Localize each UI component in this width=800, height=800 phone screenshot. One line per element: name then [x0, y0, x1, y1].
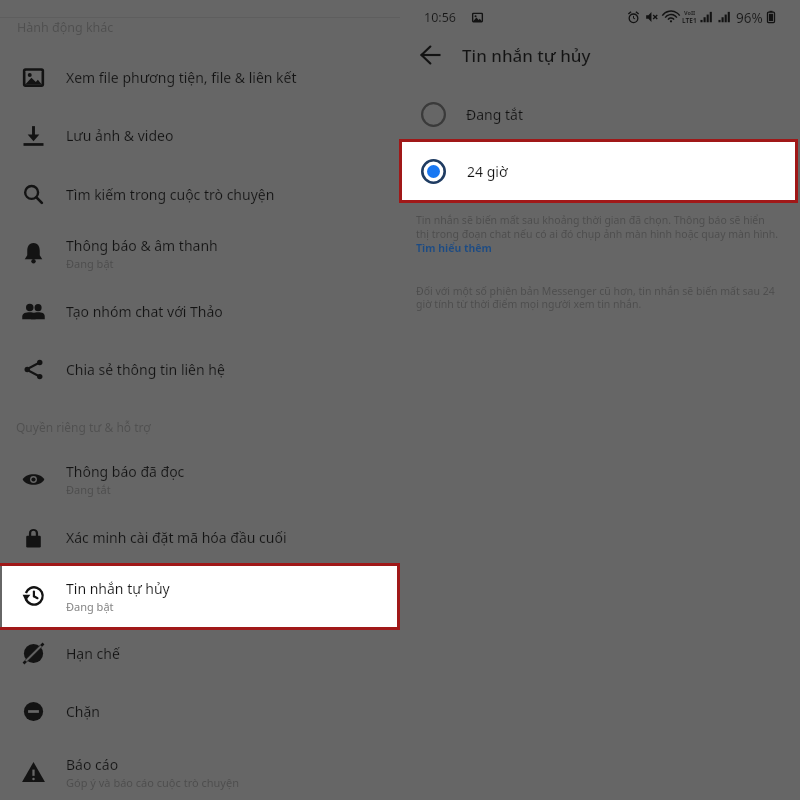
button[interactable]: Chặn	[0, 684, 400, 738]
staticText: 10:56	[424, 9, 456, 26]
staticText: Thông báo đã đọc	[66, 462, 185, 481]
staticText: Tạo nhóm chat với Thảo	[66, 302, 223, 321]
staticText: Đang bật	[66, 599, 114, 614]
button[interactable]: Xác minh cài đặt mã hóa đầu cuối	[0, 510, 400, 564]
button[interactable]: 24 giờ	[400, 142, 800, 201]
staticText: Tìm kiếm trong cuộc trò chuyện	[66, 185, 275, 204]
button[interactable]: Back	[400, 34, 462, 76]
staticText: Xác minh cài đặt mã hóa đầu cuối	[66, 528, 287, 547]
staticText: Thông báo & âm thanh	[66, 236, 218, 255]
staticText: Tin nhắn tự hủy	[66, 579, 170, 598]
staticText: Quyền riêng tư & hỗ trợ	[16, 419, 151, 435]
button[interactable]: Thông báo đã đọc	[0, 452, 400, 506]
staticText: Tin nhắn sẽ biến mất sau khoảng thời gia…	[416, 213, 780, 241]
staticText: Hành động khác	[17, 19, 114, 36]
staticText: Báo cáo	[66, 755, 119, 774]
button[interactable]: Xem file phương tiện, file & liên kết	[0, 50, 400, 104]
staticText: Đang bật	[66, 256, 114, 271]
button[interactable]: Thông báo & âm thanh	[0, 226, 400, 280]
staticText: Góp ý và báo cáo cuộc trò chuyện	[66, 775, 239, 790]
staticText: Đối với một số phiên bản Messenger cũ hơ…	[416, 284, 780, 311]
staticText: Chia sẻ thông tin liên hệ	[66, 360, 225, 379]
button[interactable]: Báo cáo	[0, 745, 400, 799]
staticText: Hạn chế	[66, 644, 120, 663]
button[interactable]: Hạn chế	[0, 626, 400, 680]
staticText: Chặn	[66, 702, 101, 721]
staticText: VoII	[684, 9, 696, 16]
button[interactable]: Lưu ảnh & video	[0, 108, 400, 162]
staticText: Lưu ảnh & video	[66, 126, 174, 145]
button[interactable]: Chia sẻ thông tin liên hệ	[0, 342, 400, 396]
staticText: Đang tắt	[66, 482, 111, 497]
staticText: 24 giờ	[467, 162, 508, 181]
staticText: Tin nhắn tự hủy	[462, 44, 591, 67]
staticText: 96%	[736, 9, 763, 25]
staticText: Đang tắt	[466, 105, 523, 124]
button[interactable]: Tạo nhóm chat với Thảo	[0, 284, 400, 338]
staticText: LTE1	[682, 16, 697, 25]
button[interactable]: Đang tắt	[400, 93, 800, 136]
button[interactable]: Tin nhắn tự hủy	[0, 569, 400, 623]
button[interactable]: Tìm kiếm trong cuộc trò chuyện	[0, 167, 400, 221]
button[interactable]: Tìm hiểu thêm	[416, 241, 492, 255]
staticText: Xem file phương tiện, file & liên kết	[66, 68, 297, 87]
